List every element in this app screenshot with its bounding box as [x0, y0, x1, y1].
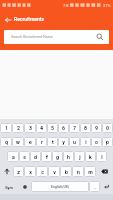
staticText: 5 [51, 125, 54, 131]
button[interactable]: i [80, 137, 91, 147]
button[interactable]: k [85, 151, 96, 162]
button[interactable]: 7 [69, 123, 80, 133]
button[interactable]: s [19, 151, 30, 162]
button[interactable]: Change input method [18, 181, 31, 192]
staticText: x [29, 169, 32, 175]
staticText: . [94, 184, 96, 190]
staticText: k [89, 154, 92, 160]
staticText: o [95, 139, 98, 145]
button[interactable]: p [102, 137, 113, 147]
button[interactable]: v [48, 166, 60, 177]
button[interactable]: a [7, 151, 19, 162]
staticText: j [79, 154, 81, 160]
staticText: 3 [29, 125, 32, 131]
staticText: v [53, 169, 56, 175]
staticText: e [29, 139, 32, 145]
button[interactable]: Search Recruitment Name [4, 30, 109, 44]
staticText: Search Recruitment Name [11, 35, 53, 39]
button[interactable]: x [24, 166, 36, 177]
staticText: i [85, 139, 87, 145]
button[interactable]: Shift [0, 166, 13, 177]
staticText: d [34, 154, 37, 160]
button[interactable]: 4 [36, 123, 47, 133]
staticText: p [106, 139, 109, 145]
staticText: f [46, 154, 48, 160]
staticText: 6 [62, 125, 65, 131]
button[interactable]: 6 [58, 123, 69, 133]
staticText: n [77, 169, 80, 175]
button[interactable]: 9 [91, 123, 102, 133]
button[interactable]: 3 [24, 123, 36, 133]
button[interactable]: j [74, 151, 85, 162]
staticText: r [41, 139, 43, 145]
button[interactable]: z [13, 166, 24, 177]
button[interactable]: g [52, 151, 63, 162]
button[interactable]: Sym [0, 181, 18, 192]
button[interactable]: h [63, 151, 74, 162]
button[interactable]: 0 [102, 123, 113, 133]
staticText: 2 [17, 125, 20, 131]
staticText: t [52, 139, 54, 145]
button[interactable]: t [47, 137, 58, 147]
staticText: a [12, 154, 15, 160]
staticText: y [62, 139, 65, 145]
button[interactable]: e [24, 137, 36, 147]
button[interactable]: Backspace [96, 166, 113, 177]
button[interactable]: m [84, 166, 96, 177]
staticText: 7:8 [63, 3, 69, 8]
button[interactable]: Enter [100, 181, 113, 192]
staticText: s [23, 154, 26, 160]
button[interactable]: w [12, 137, 24, 147]
staticText: 37% [103, 3, 111, 8]
button[interactable]: c [36, 166, 48, 177]
staticText: l [101, 154, 103, 160]
staticText: w [16, 139, 20, 145]
staticText: English(UK) [51, 185, 69, 189]
button[interactable]: 8 [80, 123, 91, 133]
staticText: 1 [5, 125, 8, 131]
button[interactable]: o [91, 137, 102, 147]
staticText: 0 [106, 125, 109, 131]
staticText: 8 [84, 125, 87, 131]
staticText: g [56, 154, 59, 160]
button[interactable]: f [41, 151, 52, 162]
staticText: m [88, 169, 93, 175]
button[interactable]: Back [2, 14, 13, 25]
staticText: 7 [73, 125, 76, 131]
button[interactable]: b [60, 166, 72, 177]
button[interactable]: q [0, 137, 12, 147]
staticText: q [5, 139, 8, 145]
button[interactable]: r [36, 137, 47, 147]
button[interactable]: n [72, 166, 84, 177]
button[interactable]: d [30, 151, 41, 162]
button[interactable]: 2 [12, 123, 24, 133]
button[interactable]: 1 [0, 123, 12, 133]
button[interactable]: English(UK) [31, 181, 89, 192]
staticText: b [65, 169, 68, 175]
button[interactable]: y [58, 137, 69, 147]
button[interactable]: . [89, 181, 100, 192]
button[interactable]: 5 [47, 123, 58, 133]
staticText: u [73, 139, 76, 145]
staticText: Sym [5, 185, 13, 189]
button[interactable]: u [69, 137, 80, 147]
staticText: Recruitments [14, 16, 44, 22]
staticText: h [67, 154, 70, 160]
staticText: 4 [40, 125, 43, 131]
staticText: c [41, 169, 44, 175]
button[interactable]: l [96, 151, 107, 162]
staticText: 9 [95, 125, 98, 131]
staticText: z [17, 169, 20, 175]
